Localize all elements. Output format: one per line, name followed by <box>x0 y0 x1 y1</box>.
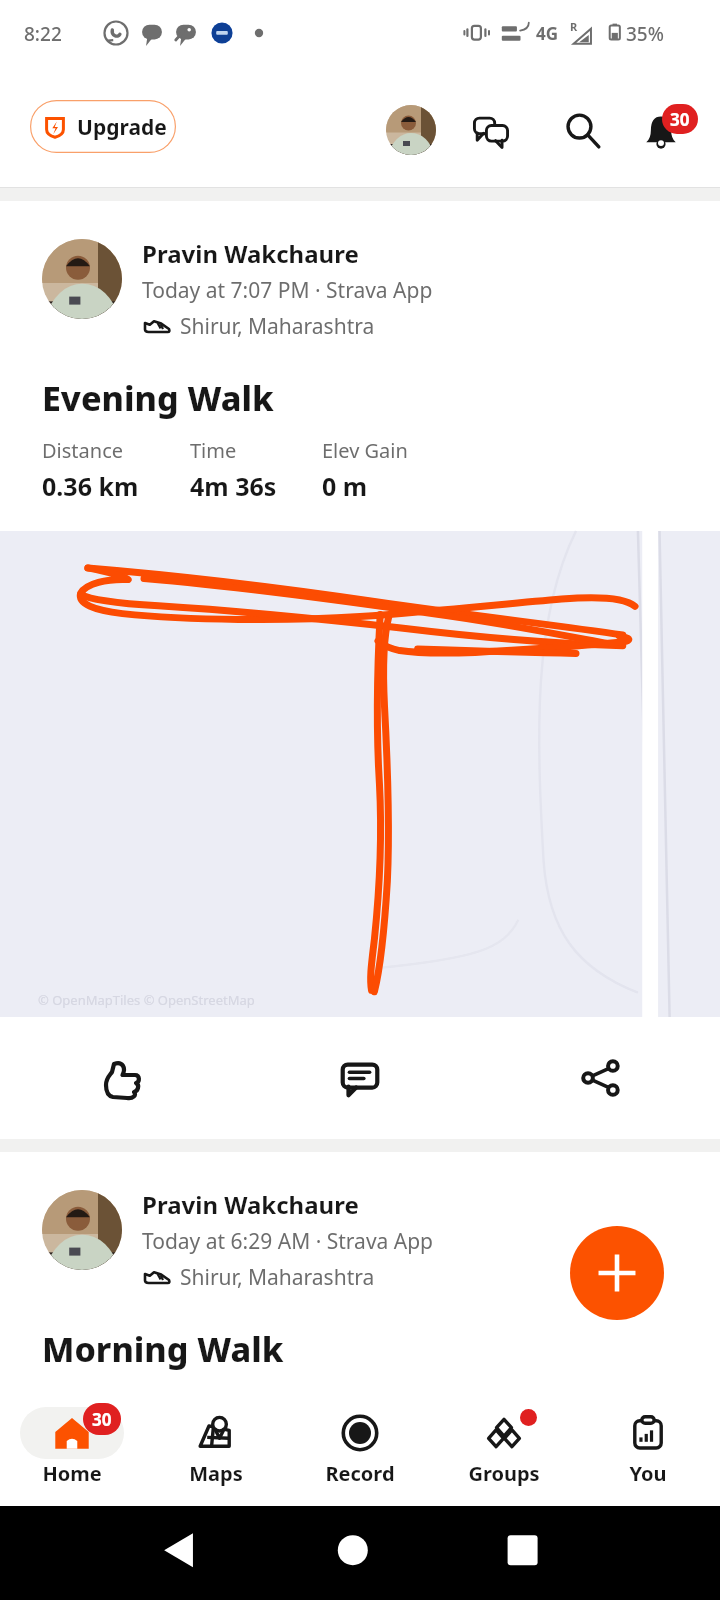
staticText: Today at 7:07 PM · Strava App <box>142 276 433 305</box>
button[interactable] <box>30 100 34 153</box>
staticText: 0 m <box>322 469 368 503</box>
button[interactable]: Maps <box>144 1397 288 1506</box>
staticText: Pravin Wakchaure <box>142 237 359 270</box>
staticText: 35% <box>626 21 664 47</box>
button[interactable]: Share <box>480 1017 720 1139</box>
button[interactable]: Upgrade <box>30 100 176 153</box>
staticText: 30 <box>670 108 690 131</box>
staticText: Elev Gain <box>322 437 408 464</box>
button[interactable]: Pravin Wakchaure <box>0 239 720 343</box>
button[interactable]: Notifications, 30 new <box>636 104 696 164</box>
staticText: 4m 36s <box>190 469 277 503</box>
button[interactable]: Record new activity <box>570 1226 664 1320</box>
button[interactable]: Search <box>556 104 610 158</box>
staticText: Shirur, Maharashtra <box>180 312 375 341</box>
button[interactable]: You <box>576 1397 720 1506</box>
staticText: Distance <box>42 437 124 464</box>
staticText: Morning Walk <box>42 1326 284 1372</box>
staticText: Home <box>42 1460 102 1487</box>
staticText: Evening Walk <box>42 375 274 421</box>
staticText: Today at 6:29 AM · Strava App <box>142 1227 434 1256</box>
button[interactable]: Pravin Wakchaure <box>0 1190 720 1294</box>
button[interactable]: Give kudos <box>0 1017 240 1139</box>
staticText: 0.36 km <box>42 469 139 503</box>
button[interactable]: Comment <box>240 1017 480 1139</box>
button[interactable]: © OpenMapTiles © OpenStreetMap <box>0 531 720 1017</box>
staticText: Upgrade <box>77 113 167 142</box>
staticText: You <box>629 1460 667 1487</box>
staticText: Maps <box>189 1460 243 1487</box>
staticText: © OpenMapTiles © OpenStreetMap <box>38 991 255 1009</box>
button[interactable]: 30 <box>0 1397 144 1506</box>
staticText: Time <box>190 437 237 464</box>
button[interactable]: Messages <box>464 104 518 158</box>
button[interactable]: Groups <box>432 1397 576 1506</box>
button[interactable]: Profile <box>386 105 436 155</box>
staticText: Groups <box>468 1460 540 1487</box>
staticText: Pravin Wakchaure <box>142 1188 359 1221</box>
staticText: 8:22 <box>24 21 62 47</box>
button[interactable]: Record <box>288 1397 432 1506</box>
staticText: R <box>570 19 578 34</box>
staticText: 4G <box>536 22 559 45</box>
staticText: Record <box>325 1460 395 1487</box>
staticText: 30 <box>92 1408 112 1431</box>
staticText: Shirur, Maharashtra <box>180 1263 375 1292</box>
